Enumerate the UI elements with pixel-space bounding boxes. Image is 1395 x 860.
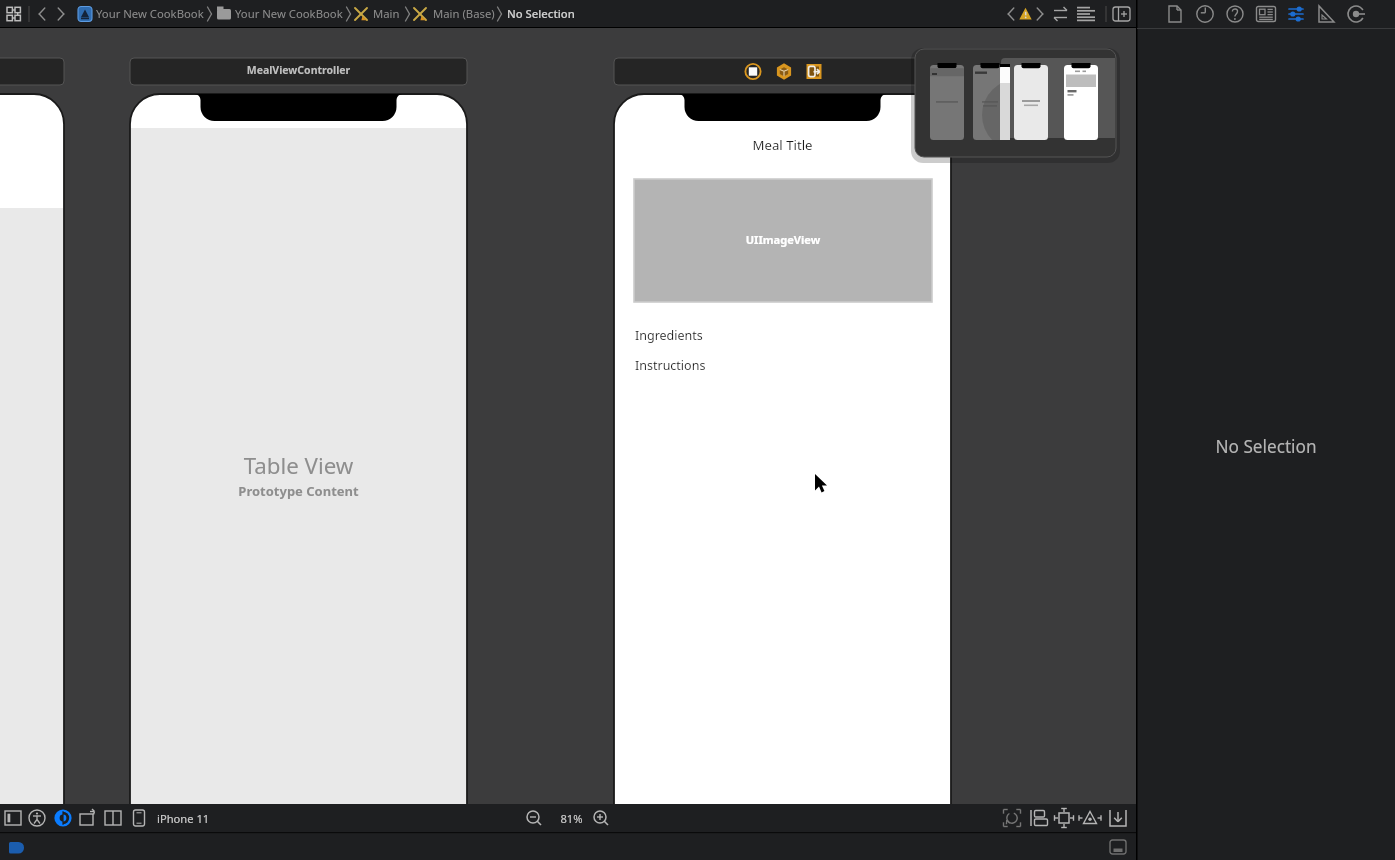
button[interactable]: First responder (773, 60, 797, 84)
button[interactable]: Next issue (1034, 0, 1050, 28)
staticText: No Selection (1137, 435, 1395, 458)
staticText: Meal Title (614, 136, 951, 154)
staticText: iPhone 11 (157, 811, 210, 826)
button[interactable]: Update frames (1000, 806, 1024, 830)
button[interactable]: Issue (1018, 0, 1034, 28)
button[interactable]: Swap assistant (1046, 0, 1070, 28)
button[interactable]: iPhone 11 (155, 806, 260, 830)
button[interactable]: Meal scene (614, 58, 951, 85)
button[interactable]: Embed in (1027, 806, 1051, 830)
button[interactable]: Back (33, 0, 50, 28)
button[interactable]: Scene thumbnails (915, 49, 1116, 157)
staticText: Your New CookBook (96, 6, 204, 21)
button[interactable]: Align (1052, 806, 1076, 830)
button[interactable]: Exit (803, 60, 827, 84)
button[interactable]: Connections inspector (1342, 0, 1370, 28)
staticText: Table View (130, 450, 467, 480)
staticText: Ingredients (635, 327, 703, 344)
button[interactable]: Quick help (1222, 0, 1249, 28)
staticText: Your New CookBook (235, 6, 343, 21)
button[interactable]: Minimap (1070, 0, 1100, 28)
button[interactable]: Attributes inspector (1282, 0, 1310, 28)
button[interactable]: Zoom out (522, 806, 546, 830)
button[interactable]: History inspector (1192, 0, 1219, 28)
button[interactable]: Forward (53, 0, 70, 28)
button[interactable]: Add constraints (1078, 806, 1102, 830)
button[interactable]: Zoom in (588, 806, 612, 830)
staticText: No Selection (507, 6, 575, 21)
button[interactable]: Add editor (1105, 0, 1133, 28)
button[interactable]: Toggle navigator (0, 0, 22, 28)
button[interactable]: File inspector (1163, 0, 1190, 28)
button[interactable]: Identity inspector (1252, 0, 1280, 28)
staticText: UIImageView (634, 232, 932, 247)
button[interactable]: Resolve auto layout issues (1106, 806, 1130, 830)
staticText: Instructions (635, 357, 706, 374)
button[interactable]: Size inspector (1312, 0, 1340, 28)
button[interactable]: Orientation (77, 806, 100, 830)
staticText: Main (373, 6, 400, 21)
button[interactable]: Device (128, 806, 151, 830)
button[interactable]: MealViewController scene (130, 58, 467, 85)
staticText: Main (Base) (433, 6, 495, 21)
button[interactable]: Accessibility (27, 806, 49, 830)
button[interactable]: Appearance (52, 806, 74, 830)
staticText: MealViewController (130, 63, 467, 77)
staticText: 81% (553, 811, 590, 826)
button[interactable]: Previous issue (1002, 0, 1018, 28)
button[interactable]: View controller (742, 60, 766, 84)
button[interactable]: Adaptation (102, 806, 125, 830)
staticText: Prototype Content (130, 482, 467, 500)
button[interactable]: Toggle document outline (4, 806, 26, 830)
